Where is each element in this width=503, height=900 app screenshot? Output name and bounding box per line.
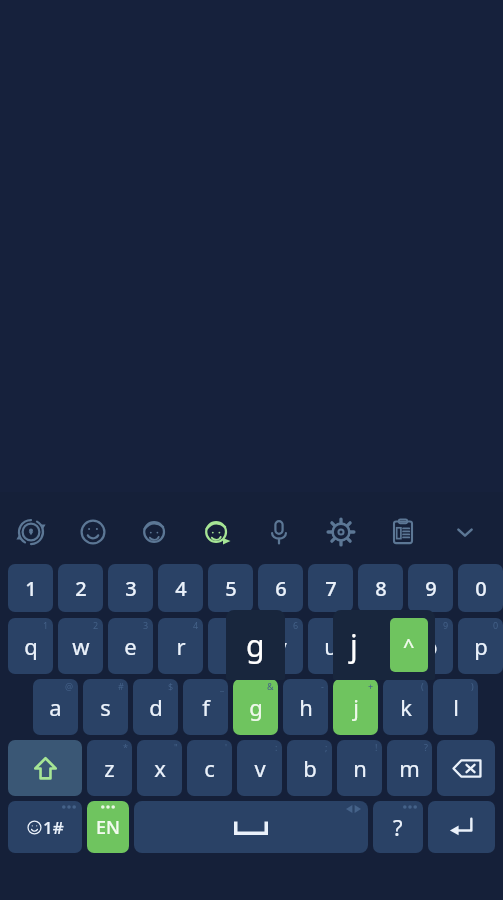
- button[interactable]: Settings: [310, 506, 372, 558]
- staticText: h: [299, 692, 313, 722]
- button[interactable]: Shift: [8, 740, 82, 796]
- button[interactable]: z: [87, 740, 132, 796]
- staticText: 3: [143, 619, 149, 631]
- button[interactable]: p: [458, 618, 503, 674]
- button[interactable]: l: [433, 679, 478, 735]
- button[interactable]: Space: [134, 801, 368, 853]
- staticText: ?: [424, 741, 428, 753]
- button[interactable]: f: [183, 679, 228, 735]
- staticText: e: [124, 631, 137, 661]
- button[interactable]: r: [158, 618, 203, 674]
- button[interactable]: 2: [58, 564, 103, 612]
- staticText: s: [100, 692, 111, 722]
- staticText: &: [267, 680, 274, 692]
- staticText: _: [220, 680, 224, 692]
- button[interactable]: a: [33, 679, 78, 735]
- button[interactable]: Voice input: [248, 506, 310, 558]
- button[interactable]: 8: [358, 564, 403, 612]
- button[interactable]: Enter: [428, 801, 495, 853]
- button[interactable]: m: [387, 740, 432, 796]
- button[interactable]: g: [233, 679, 278, 735]
- staticText: $: [168, 680, 174, 692]
- staticText: n: [353, 753, 367, 783]
- button[interactable]: Theme: [0, 506, 62, 558]
- button[interactable]: v: [237, 740, 282, 796]
- staticText: z: [104, 753, 115, 783]
- button[interactable]: t: [208, 618, 253, 674]
- staticText: y: [275, 631, 287, 661]
- button[interactable]: 6: [258, 564, 303, 612]
- button[interactable]: Backspace: [437, 740, 495, 796]
- staticText: :: [275, 741, 278, 753]
- staticText: 1#: [43, 816, 64, 839]
- staticText: o: [424, 631, 438, 661]
- staticText: f: [202, 692, 210, 722]
- staticText: k: [400, 692, 412, 722]
- staticText: (: [421, 680, 424, 692]
- staticText: 4: [175, 575, 187, 602]
- button[interactable]: d: [133, 679, 178, 735]
- button[interactable]: 5: [208, 564, 253, 612]
- button[interactable]: o: [408, 618, 453, 674]
- button[interactable]: k: [383, 679, 428, 735]
- button[interactable]: x: [137, 740, 182, 796]
- button[interactable]: 4: [158, 564, 203, 612]
- button[interactable]: h: [283, 679, 328, 735]
- button[interactable]: n: [337, 740, 382, 796]
- staticText: ^: [403, 632, 415, 659]
- button[interactable]: i: [358, 618, 403, 674]
- staticText: u: [324, 631, 338, 661]
- button[interactable]: 3: [108, 564, 153, 612]
- button[interactable]: Avatar: [124, 506, 186, 558]
- button[interactable]: y: [258, 618, 303, 674]
- staticText: 4: [193, 619, 199, 631]
- staticText: m: [399, 753, 420, 783]
- button[interactable]: 0: [458, 564, 503, 612]
- staticText: 3: [125, 575, 137, 602]
- staticText: d: [149, 692, 163, 722]
- button[interactable]: Symbols and emoji: [8, 801, 82, 853]
- staticText: 9: [443, 619, 449, 631]
- button[interactable]: EN: [87, 801, 129, 853]
- staticText: p: [474, 631, 488, 661]
- button[interactable]: Clipboard: [372, 506, 434, 558]
- staticText: j: [350, 625, 358, 666]
- button[interactable]: q: [8, 618, 53, 674]
- staticText: 2: [93, 619, 99, 631]
- button[interactable]: c: [187, 740, 232, 796]
- staticText: 9: [425, 575, 437, 602]
- button[interactable]: b: [287, 740, 332, 796]
- button[interactable]: e: [108, 618, 153, 674]
- staticText: 1: [25, 575, 37, 602]
- button[interactable]: 7: [308, 564, 353, 612]
- button[interactable]: ?: [373, 801, 423, 853]
- staticText: !: [375, 741, 378, 753]
- button[interactable]: Emoji: [62, 506, 124, 558]
- staticText: j: [353, 692, 359, 722]
- staticText: ;: [325, 741, 328, 753]
- button[interactable]: u: [308, 618, 353, 674]
- staticText: 8: [375, 575, 387, 602]
- button[interactable]: s: [83, 679, 128, 735]
- button[interactable]: ^: [390, 618, 428, 672]
- button[interactable]: Collapse: [434, 506, 496, 558]
- staticText: *: [123, 741, 128, 753]
- staticText: 5: [225, 575, 237, 602]
- staticText: x: [154, 753, 166, 783]
- staticText: a: [49, 692, 62, 722]
- staticText: 6: [275, 575, 287, 602]
- button[interactable]: 9: [408, 564, 453, 612]
- button[interactable]: Sticker: [186, 506, 248, 558]
- staticText: c: [204, 753, 215, 783]
- button[interactable]: w: [58, 618, 103, 674]
- button[interactable]: 1: [8, 564, 53, 612]
- staticText: 6: [293, 619, 299, 631]
- button[interactable]: j: [333, 679, 378, 735]
- staticText: EN: [96, 815, 120, 840]
- staticText: @: [65, 680, 74, 692]
